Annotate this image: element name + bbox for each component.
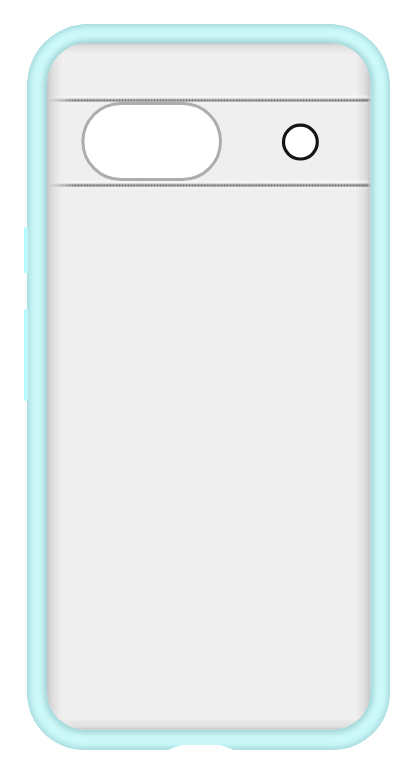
button[interactable]: Mint phone case product photo (0, 0, 415, 774)
